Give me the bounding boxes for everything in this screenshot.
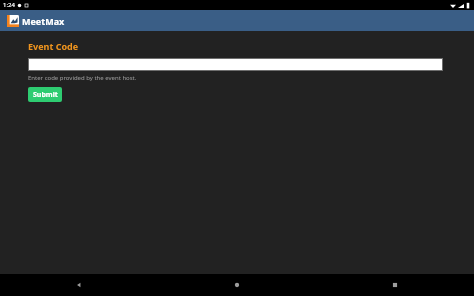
button[interactable]: Recent apps xyxy=(316,274,474,296)
staticText: MeetMax xyxy=(22,15,65,27)
staticText: Event Code xyxy=(28,40,79,52)
button[interactable]: Event code input xyxy=(28,58,443,71)
staticText: Enter code provided by the event host. xyxy=(28,74,137,82)
button[interactable]: Submit xyxy=(28,87,62,102)
button[interactable]: Back xyxy=(0,274,158,296)
button[interactable]: MeetMax home xyxy=(7,15,65,27)
button[interactable]: Home xyxy=(158,274,316,296)
staticText: Submit xyxy=(33,90,58,100)
staticText: 1:24 xyxy=(3,1,15,9)
